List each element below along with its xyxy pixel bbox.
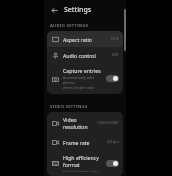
- button[interactable]: High efficiency format: [47, 150, 123, 176]
- staticText: VIDEO SETTINGS: [50, 104, 88, 110]
- staticText: Audio control: [63, 52, 96, 59]
- button[interactable]: Video resolution: [47, 112, 123, 134]
- staticText: High efficiency format: [63, 154, 103, 168]
- staticText: Automatically take photos when people en…: [63, 75, 103, 90]
- staticText: Capture videos using up to 50% less spac…: [63, 169, 103, 172]
- staticText: Settings: [64, 5, 92, 15]
- button[interactable]: Capture entries: [47, 63, 123, 94]
- staticText: AUDIO SETTINGS: [50, 23, 89, 29]
- button[interactable]: Toggle: [106, 160, 119, 167]
- staticText: Frame rate: [63, 139, 90, 146]
- button[interactable]: Toggle: [106, 75, 119, 82]
- button[interactable]: Back: [48, 4, 60, 16]
- button[interactable]: Audio control: [47, 47, 123, 63]
- staticText: Aspect ratio: [63, 36, 92, 43]
- button[interactable]: Frame rate: [47, 134, 123, 150]
- staticText: 30 fps: [107, 139, 119, 145]
- staticText: Video resolution: [63, 116, 94, 130]
- staticText: Capture entries: [63, 67, 101, 74]
- button[interactable]: Aspect ratio: [47, 31, 123, 47]
- staticText: 16:9: [110, 36, 119, 42]
- staticText: 1920x1080: [97, 120, 119, 126]
- staticText: Off: [112, 52, 119, 58]
